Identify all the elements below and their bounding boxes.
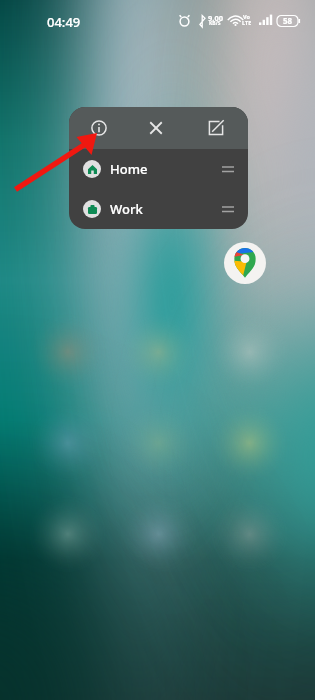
button[interactable]: Close <box>128 107 184 149</box>
staticText: 58 <box>283 15 293 26</box>
button[interactable]: Google Maps <box>224 242 266 284</box>
button[interactable]: Home <box>69 149 248 189</box>
staticText: 04:49 <box>47 13 81 31</box>
button[interactable]: Edit <box>184 107 248 149</box>
staticText: LTE <box>242 19 252 26</box>
staticText: Vo <box>243 13 250 20</box>
staticText: Home <box>110 160 148 178</box>
staticText: Work <box>110 200 143 218</box>
button[interactable]: Info <box>69 107 128 149</box>
button[interactable]: Work <box>69 189 248 229</box>
staticText: 9.00 <box>208 13 223 23</box>
staticText: KB/S <box>209 20 221 27</box>
